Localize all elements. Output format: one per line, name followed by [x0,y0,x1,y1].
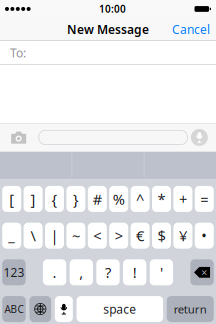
button[interactable]: ^ [131,186,150,212]
button[interactable]: ~ [66,223,85,249]
staticText: % [113,189,125,209]
button[interactable]: To: [0,41,216,65]
button[interactable]: { [45,186,64,212]
staticText: | [50,226,58,246]
button[interactable]: 123 [2,259,26,285]
staticText: ] [31,189,36,209]
staticText: > [115,226,123,246]
button[interactable]: } [66,186,85,212]
staticText: ' [160,262,163,282]
staticText: 123 [3,264,24,280]
staticText: Cancel [172,21,210,38]
staticText: ! [133,262,137,282]
staticText: 10:00 [99,2,126,16]
staticText: New Message [67,21,149,38]
button[interactable]: < [88,223,107,249]
button[interactable]: Camera [1,123,39,152]
button[interactable]: . [43,259,66,285]
button[interactable]: ! [123,259,146,285]
button[interactable]: Dictation [55,296,73,322]
staticText: space [103,301,136,317]
staticText: , [79,262,83,282]
staticText: { [51,189,57,209]
button[interactable]: | [45,223,64,249]
staticText: + [179,189,187,209]
button[interactable]: + [173,186,192,212]
button[interactable]: % [109,186,128,212]
button[interactable]: $ [152,223,171,249]
staticText: * [157,189,165,209]
button[interactable]: return [167,296,214,322]
staticText: To: [10,45,26,61]
button[interactable]: space [76,296,163,322]
staticText: } [73,189,79,209]
staticText: _ [8,226,15,246]
button[interactable]: = [195,186,214,212]
staticText: [ [9,189,14,209]
button[interactable]: _ [2,223,21,249]
staticText: ~ [72,226,80,246]
staticText: • [201,226,207,246]
staticText: \ [31,226,36,246]
staticText: $ [157,226,165,246]
button[interactable]: ? [96,259,120,285]
staticText: ^ [136,189,144,209]
staticText: × [201,265,207,280]
staticText: ? [105,262,111,282]
button[interactable]: \ [24,223,43,249]
button[interactable]: ABC [2,296,26,322]
button[interactable]: > [109,223,128,249]
button[interactable]: Record audio [187,123,215,152]
button[interactable]: Delete [190,259,214,285]
staticText: = [200,189,208,209]
button[interactable]: * [152,186,171,212]
staticText: ABC [4,302,23,316]
staticText: return [174,301,207,317]
button[interactable]: , [70,259,93,285]
button[interactable]: ¥ [173,223,192,249]
button[interactable]: Cancel [166,18,216,41]
button[interactable]: € [131,223,150,249]
button[interactable]: • [195,223,214,249]
button[interactable]: Next keyboard [29,296,51,322]
staticText: . [53,262,57,282]
staticText: < [93,226,101,246]
staticText: € [136,226,144,246]
staticText: ¥ [179,226,187,246]
button[interactable]: ] [24,186,43,212]
button[interactable]: ' [150,259,173,285]
button[interactable]: # [88,186,107,212]
button[interactable]: [ [2,186,21,212]
staticText: # [93,189,102,209]
